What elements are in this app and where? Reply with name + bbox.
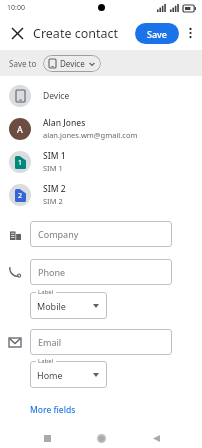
button[interactable]: Email [30,329,172,355]
staticText: Device [60,58,85,69]
button[interactable]: Recent apps [39,430,55,446]
button[interactable]: Home [30,361,107,388]
staticText: Email [38,336,62,348]
staticText: Save [147,28,168,40]
button[interactable]: Close [4,20,30,46]
staticText: SIM 1 [43,163,63,173]
button[interactable]: More options [180,23,200,43]
button[interactable]: Company [30,221,172,247]
staticText: alan.jones.wm@gmail.com [43,130,138,140]
button[interactable]: Phone [30,259,172,285]
staticText: Mobile [37,300,66,312]
button[interactable]: More fields [28,402,78,418]
staticText: A [17,123,23,135]
staticText: Label [38,288,54,296]
staticText: SIM 1 [43,150,66,162]
staticText: More fields [30,404,76,416]
button[interactable]: Mobile [30,292,107,319]
staticText: 10:00 [7,3,25,13]
staticText: Home [37,369,63,381]
staticText: Company [38,228,79,240]
staticText: Label [38,357,54,365]
staticText: Phone [38,266,66,278]
staticText: SIM 2 [43,196,63,206]
button[interactable]: Home [93,430,109,446]
staticText: SIM 2 [43,183,66,195]
button[interactable]: Device [0,79,202,112]
button[interactable]: 1 [0,145,202,178]
staticText: Create contact [33,25,119,42]
button[interactable]: Back [148,430,164,446]
button[interactable]: Device [43,55,101,72]
staticText: Device [43,90,70,102]
staticText: 1 [18,158,23,168]
staticText: Alan Jones [43,117,86,129]
button[interactable]: Save [135,23,179,44]
staticText: Save to [9,58,37,69]
staticText: 2 [18,191,23,201]
button[interactable]: 2 [0,178,202,211]
button[interactable]: A [0,112,202,145]
